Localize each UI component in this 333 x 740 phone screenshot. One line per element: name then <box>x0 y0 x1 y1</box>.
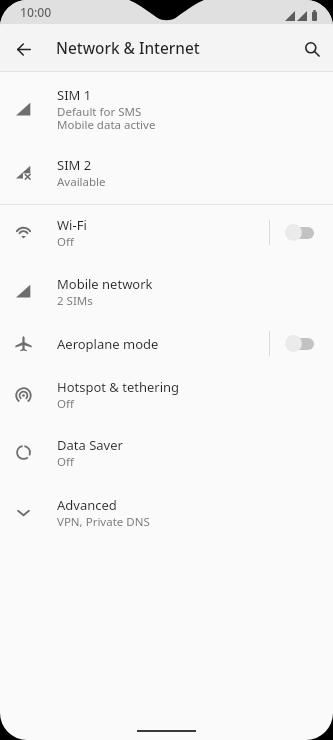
staticText: SIM 2 <box>57 156 92 174</box>
staticText: Off <box>57 396 74 412</box>
button[interactable] <box>0 260 333 323</box>
staticText: Advanced <box>57 496 117 514</box>
staticText: Off <box>57 454 74 470</box>
staticText: Default for SMS Mobile data active <box>57 104 156 133</box>
staticText: Mobile network <box>57 275 153 293</box>
button[interactable] <box>0 484 333 541</box>
button[interactable]: Search <box>292 29 332 69</box>
button[interactable]: Toggle Aeroplane mode <box>0 322 333 365</box>
button[interactable]: Back <box>2 27 46 71</box>
button[interactable] <box>0 366 333 424</box>
staticText: 2 SIMs <box>57 293 93 309</box>
staticText: Aeroplane mode <box>57 335 159 353</box>
button[interactable] <box>0 142 333 203</box>
staticText: 10:00 <box>20 4 52 21</box>
staticText: Off <box>57 234 74 250</box>
button[interactable]: Toggle Wi-Fi <box>0 205 333 260</box>
button[interactable]: Toggle Wi-Fi <box>279 205 319 260</box>
staticText: VPN, Private DNS <box>57 514 150 530</box>
staticText: Hotspot & tethering <box>57 378 180 396</box>
staticText: Available <box>57 174 106 190</box>
staticText: Wi-Fi <box>57 216 87 234</box>
button[interactable] <box>0 73 333 145</box>
staticText: SIM 1 <box>57 86 92 104</box>
button[interactable] <box>0 422 333 483</box>
staticText: Network & Internet <box>56 38 200 59</box>
staticText: Data Saver <box>57 436 123 454</box>
button[interactable]: Toggle Aeroplane mode <box>279 322 319 365</box>
